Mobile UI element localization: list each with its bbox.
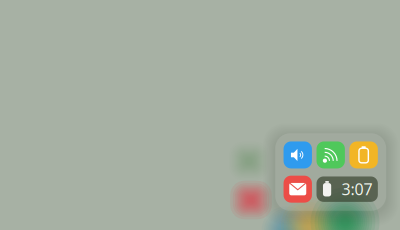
staticText: 3:07 [341, 178, 372, 200]
button[interactable]: Mail [284, 176, 312, 203]
button[interactable]: Volume [284, 141, 312, 168]
button[interactable]: AirPlay [316, 141, 345, 168]
button[interactable]: Battery [349, 141, 378, 168]
button[interactable]: Battery 3 hours 7 minutes [316, 176, 378, 202]
